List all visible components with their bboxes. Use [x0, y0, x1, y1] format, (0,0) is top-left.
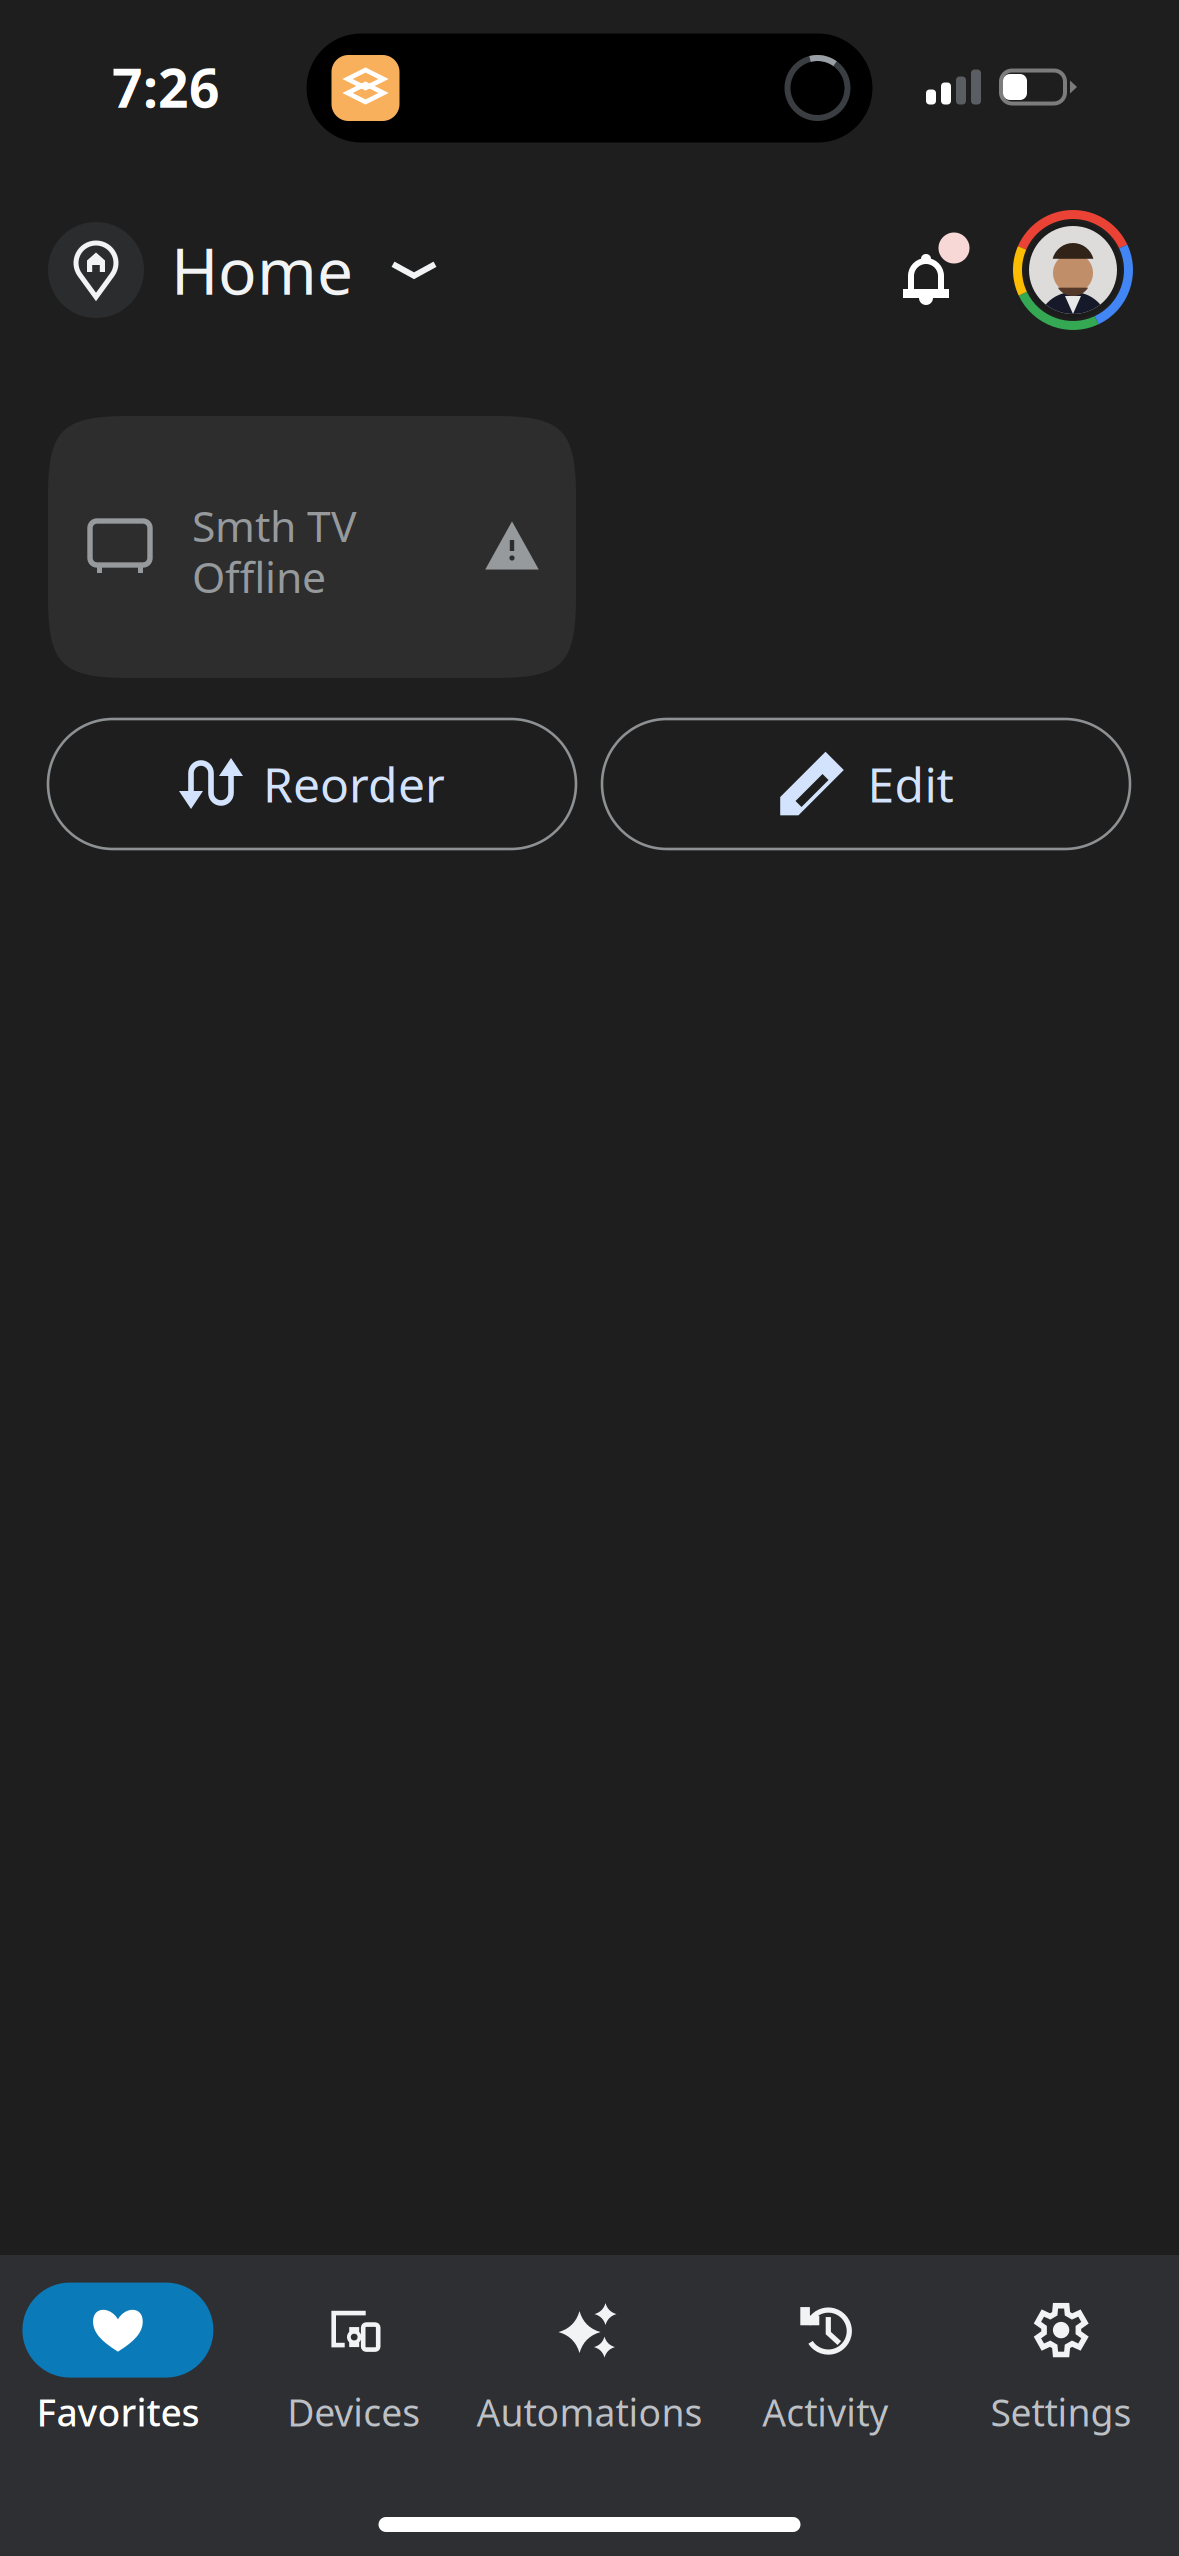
button[interactable]: Favorites: [0, 2284, 236, 2444]
staticText: Smth TV: [192, 496, 357, 554]
staticText: Home: [171, 226, 353, 314]
button[interactable]: Home: [48, 222, 438, 318]
button[interactable]: Notifications: [888, 222, 970, 318]
staticText: Settings: [991, 2387, 1132, 2437]
staticText: 7:26: [112, 51, 220, 123]
staticText: Activity: [762, 2387, 888, 2437]
button[interactable]: Reorder: [48, 719, 576, 849]
button[interactable]: Settings: [943, 2284, 1179, 2444]
staticText: Reorder: [263, 751, 445, 817]
button[interactable]: Devices: [236, 2284, 472, 2444]
button[interactable]: Activity: [707, 2284, 943, 2444]
staticText: Edit: [867, 751, 953, 817]
button[interactable]: Automations: [472, 2284, 707, 2444]
button[interactable]: Account: [1013, 210, 1133, 330]
staticText: Offline: [192, 547, 326, 606]
staticText: Automations: [476, 2387, 702, 2437]
staticText: Favorites: [36, 2387, 199, 2437]
button[interactable]: Edit: [602, 719, 1130, 849]
staticText: Devices: [287, 2387, 420, 2437]
button[interactable]: Smth TV: [48, 416, 576, 678]
